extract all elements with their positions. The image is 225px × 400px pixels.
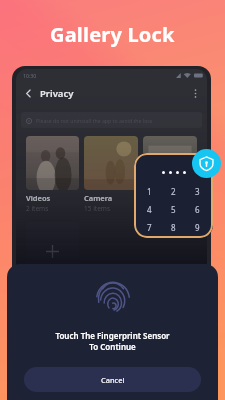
button[interactable]: Videos <box>26 136 79 213</box>
staticText: 3 <box>195 186 200 197</box>
staticText: 7 <box>147 222 152 233</box>
button[interactable]: Security shield <box>192 149 221 178</box>
button[interactable]: 6 <box>188 200 207 218</box>
staticText: 1 <box>147 186 152 197</box>
staticText: Touch The Fingerprint Sensor To Continue <box>55 330 170 352</box>
button[interactable]: 2 <box>164 182 183 200</box>
button[interactable]: Back <box>22 87 34 99</box>
button[interactable]: Add album <box>26 222 79 280</box>
staticText: Pictures <box>143 193 173 203</box>
button[interactable]: 7 <box>140 218 159 236</box>
staticText: 15 items <box>84 204 111 213</box>
staticText: 6 <box>195 204 200 215</box>
staticText: Cancel <box>101 375 125 385</box>
staticText: 10:30 <box>23 72 37 79</box>
staticText: 2 items <box>26 204 49 213</box>
staticText: 2 <box>171 186 176 197</box>
staticText: 8 <box>171 222 176 233</box>
staticText: 5 <box>171 204 176 215</box>
button[interactable]: Pictures <box>143 136 197 213</box>
staticText: 3 items <box>143 204 166 213</box>
button[interactable]: 5 <box>164 200 183 218</box>
button[interactable]: Camera <box>84 136 138 213</box>
staticText: Videos <box>26 193 51 203</box>
button[interactable]: More options <box>189 87 201 99</box>
button[interactable]: 4 <box>140 200 159 218</box>
staticText: Gallery Lock <box>50 21 175 48</box>
staticText: Privacy <box>40 87 74 100</box>
button[interactable]: 3 <box>188 182 207 200</box>
button[interactable]: 9 <box>188 218 207 236</box>
button[interactable]: 1 <box>140 182 159 200</box>
staticText: 4 <box>147 204 152 215</box>
button[interactable]: 8 <box>164 218 183 236</box>
staticText: 9 <box>195 222 200 233</box>
staticText: Please do not uninstall the app to avoid… <box>36 117 153 124</box>
staticText: Camera <box>84 193 113 203</box>
button[interactable]: Cancel <box>24 367 201 392</box>
